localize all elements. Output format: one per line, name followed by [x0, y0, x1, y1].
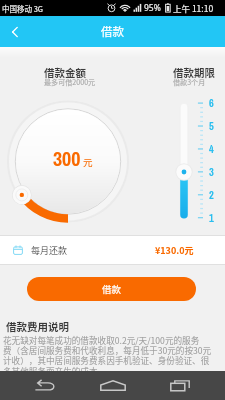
staticText: 借款金额 [44, 65, 86, 80]
staticText: 4 [209, 142, 214, 156]
staticText: 中国移动 3G [2, 3, 44, 14]
button[interactable]: 借款 [27, 277, 196, 301]
staticText: 借款 [101, 23, 124, 40]
staticText: 最多可借2000元 [44, 77, 96, 87]
staticText: 花无缺对每笔成功的借款收取0.2元/天/100元的服务 [3, 334, 200, 346]
button[interactable]: Home [91, 371, 135, 400]
button[interactable]: Back [0, 17, 30, 47]
staticText: 每月还款 [31, 244, 68, 257]
staticText: 借款费用说明 [6, 319, 69, 334]
staticText: 300 [53, 145, 81, 172]
staticText: 3 [209, 165, 214, 179]
staticText: 费（含居间服务费和代收利息，每月低于30元的按30元 [3, 344, 212, 356]
staticText: 6 [209, 96, 214, 110]
staticText: ¥130.0元 [155, 244, 194, 257]
staticText: 计收），其中居间服务费系因手机验证、身份验证、很 [3, 354, 210, 366]
staticText: 元 [83, 155, 93, 169]
staticText: 95% [144, 2, 161, 14]
staticText: 2 [209, 188, 214, 202]
button[interactable]: Recents [158, 371, 202, 400]
button[interactable]: Back [23, 371, 67, 400]
staticText: 上午 11:10 [173, 2, 214, 14]
button[interactable]: 每月还款 [0, 235, 225, 265]
staticText: 1 [209, 211, 214, 225]
staticText: 借款期限 [173, 65, 215, 80]
staticText: 5 [209, 119, 214, 133]
staticText: 借款3个月 [173, 77, 206, 87]
staticText: 多其他服务而产生的成本。 [3, 365, 107, 377]
staticText: 借款 [102, 282, 122, 296]
